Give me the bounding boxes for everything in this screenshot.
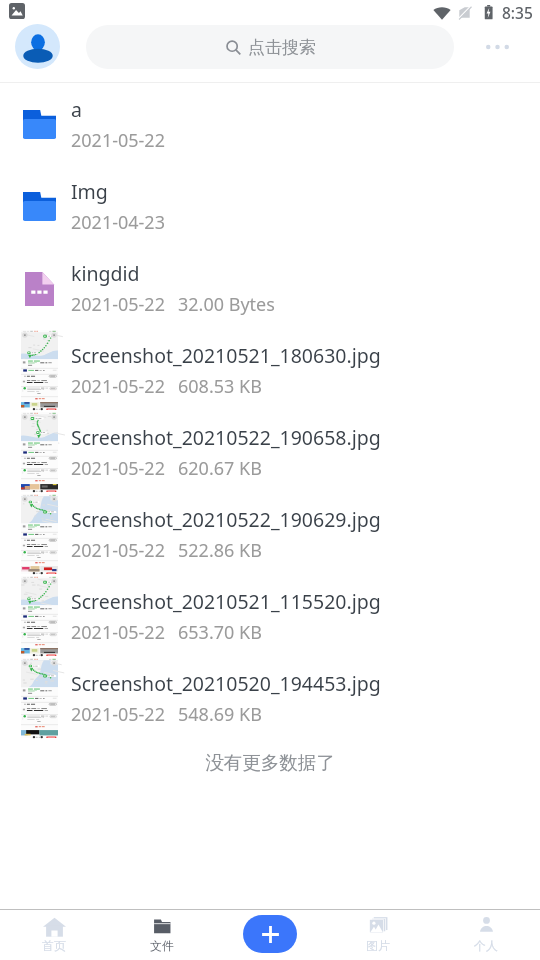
- button[interactable]: kingdid: [0, 247, 540, 329]
- button[interactable]: Screenshot_20210522_190629.jpg: [0, 493, 540, 575]
- button[interactable]: Screenshot_20210520_194453.jpg: [0, 657, 540, 739]
- staticText: 8:35: [502, 2, 533, 23]
- staticText: 2021-05-22: [71, 456, 165, 481]
- staticText: 32.00 Bytes: [178, 292, 275, 317]
- staticText: 522.86 KB: [178, 538, 262, 563]
- staticText: 首页: [42, 938, 66, 953]
- button[interactable]: More options: [472, 24, 522, 69]
- staticText: Screenshot_20210522_190658.jpg: [71, 424, 381, 451]
- button[interactable]: Add: [243, 915, 297, 953]
- staticText: 653.70 KB: [178, 620, 262, 645]
- staticText: 2021-05-22: [71, 620, 165, 645]
- staticText: 没有更多数据了: [0, 751, 540, 774]
- staticText: Screenshot_20210521_180630.jpg: [71, 342, 381, 369]
- staticText: Img: [71, 178, 108, 205]
- staticText: 548.69 KB: [178, 702, 262, 727]
- staticText: 点击搜索: [248, 37, 316, 58]
- button[interactable]: Img: [0, 165, 540, 247]
- staticText: 2021-05-22: [71, 702, 165, 727]
- button[interactable]: Screenshot_20210521_180630.jpg: [0, 329, 540, 411]
- staticText: 2021-05-22: [71, 538, 165, 563]
- staticText: Screenshot_20210520_194453.jpg: [71, 670, 381, 697]
- staticText: 2021-05-22: [71, 374, 165, 399]
- button[interactable]: Screenshot_20210522_190658.jpg: [0, 411, 540, 493]
- staticText: a: [71, 96, 82, 123]
- button[interactable]: a: [0, 83, 540, 165]
- button[interactable]: Profile: [15, 24, 60, 69]
- staticText: Screenshot_20210522_190629.jpg: [71, 506, 381, 533]
- button[interactable]: 个人: [432, 909, 540, 960]
- button[interactable]: 首页: [0, 909, 108, 960]
- staticText: 2021-05-22: [71, 128, 165, 153]
- staticText: 620.67 KB: [178, 456, 262, 481]
- button[interactable]: Screenshot_20210521_115520.jpg: [0, 575, 540, 657]
- button[interactable]: 图片: [324, 909, 432, 960]
- staticText: Screenshot_20210521_115520.jpg: [71, 588, 381, 615]
- staticText: 2021-04-23: [71, 210, 165, 235]
- staticText: 个人: [474, 938, 498, 953]
- staticText: 文件: [150, 938, 174, 953]
- button[interactable]: 文件: [108, 909, 216, 960]
- staticText: 608.53 KB: [178, 374, 262, 399]
- staticText: kingdid: [71, 260, 140, 287]
- staticText: 2021-05-22: [71, 292, 165, 317]
- button[interactable]: 点击搜索: [86, 25, 454, 69]
- staticText: 图片: [366, 938, 390, 953]
